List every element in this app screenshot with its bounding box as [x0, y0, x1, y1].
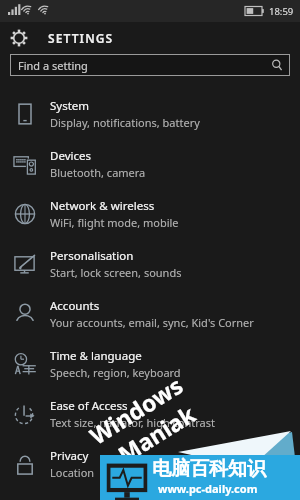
button[interactable]: Settings — [0, 22, 300, 54]
staticText: Accounts — [50, 298, 100, 314]
staticText: Bluetooth, camera — [50, 165, 146, 180]
staticText: www.pc-daily.com — [158, 481, 258, 496]
staticText: Location — [50, 465, 95, 480]
staticText: Speech, region, keyboard — [50, 365, 181, 380]
button[interactable]: Devices — [0, 139, 300, 189]
button[interactable]: Personalisation — [0, 239, 300, 289]
button[interactable]: Ease of Access — [0, 389, 300, 439]
staticText: Text size, narrator, high contrast — [50, 415, 215, 430]
staticText: System — [50, 98, 90, 114]
button[interactable]: Time & language — [0, 339, 300, 389]
button[interactable]: Accounts — [0, 289, 300, 339]
staticText: Privacy — [50, 448, 89, 464]
staticText: Time & language — [50, 348, 142, 364]
staticText: 电脑百科知识 — [152, 457, 266, 481]
button[interactable]: Find a setting — [10, 54, 290, 76]
staticText: Find a setting — [18, 58, 88, 73]
staticText: Personalisation — [50, 248, 134, 264]
staticText: Start, lock screen, sounds — [50, 265, 182, 280]
staticText: SETTINGS — [48, 30, 114, 46]
staticText: Network & wireless — [50, 198, 155, 214]
button[interactable]: System — [0, 89, 300, 139]
staticText: Devices — [50, 148, 91, 164]
staticText: Ease of Access — [50, 398, 128, 414]
staticText: Display, notifications, battery — [50, 115, 200, 130]
staticText: Your accounts, email, sync, Kid's Corner — [50, 315, 254, 330]
button[interactable]: Network & wireless — [0, 189, 300, 239]
staticText: Maniak — [112, 398, 201, 469]
other: Settings — [9, 28, 29, 48]
staticText: Windows — [83, 369, 188, 451]
staticText: 18:59 — [269, 5, 294, 18]
button[interactable]: Privacy — [0, 439, 300, 489]
staticText: WiFi, flight mode, mobile — [50, 215, 179, 230]
